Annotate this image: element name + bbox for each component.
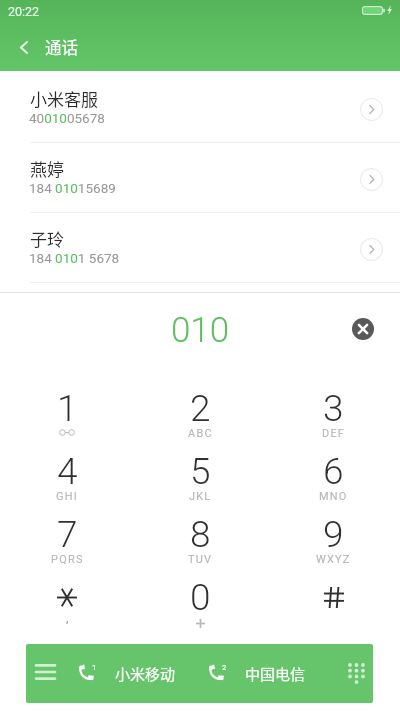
staticText: WXYZ	[316, 553, 351, 566]
button[interactable]: 7	[0, 507, 134, 570]
button[interactable]: Delete	[352, 318, 374, 340]
staticText: 4001005678	[29, 110, 105, 126]
staticText: 1	[57, 387, 78, 430]
staticText: 1	[92, 663, 97, 672]
button[interactable]: Contact details	[342, 73, 400, 143]
button[interactable]: 4	[0, 444, 134, 507]
staticText: 小米移动	[115, 663, 176, 685]
staticText: 20:22	[8, 4, 40, 19]
button[interactable]: 小米客服	[0, 73, 400, 143]
button[interactable]: Contact details	[342, 143, 400, 213]
staticText: 3	[323, 387, 344, 430]
staticText: 燕婷	[30, 156, 64, 181]
button[interactable]: ,	[0, 570, 134, 633]
staticText: ABC	[188, 427, 213, 440]
button[interactable]: 8	[134, 507, 267, 570]
staticText: 4	[57, 450, 78, 493]
staticText: DEF	[322, 427, 346, 440]
button[interactable]: 2	[134, 381, 267, 444]
staticText: 中国电信	[245, 663, 306, 685]
button[interactable]: 1	[68, 644, 179, 703]
staticText: 2	[190, 387, 211, 430]
button[interactable]: Dialpad	[330, 644, 373, 703]
staticText: 8	[190, 513, 211, 556]
button[interactable]: 5	[134, 444, 267, 507]
staticText: 6	[323, 450, 344, 493]
button[interactable]	[267, 570, 400, 633]
staticText: MNO	[319, 490, 348, 503]
staticText: PQRS	[51, 553, 84, 566]
button[interactable]: Menu	[26, 644, 71, 703]
staticText: 2	[222, 663, 227, 672]
button[interactable]: 3	[267, 381, 400, 444]
button[interactable]: Back	[2, 23, 46, 71]
staticText: 0	[190, 576, 211, 619]
staticText: 5	[190, 450, 211, 493]
staticText: 子玲	[30, 226, 64, 251]
staticText: 010	[0, 310, 400, 351]
button[interactable]: 6	[267, 444, 400, 507]
button[interactable]: 0	[134, 570, 267, 633]
staticText: 184 0101 5678	[29, 250, 120, 266]
staticText: 小米客服	[30, 86, 98, 111]
button[interactable]: 1	[0, 381, 134, 444]
staticText: TUV	[188, 553, 213, 566]
staticText: ,	[66, 611, 69, 625]
staticText: 184 01015689	[29, 180, 116, 196]
button[interactable]: 2	[198, 644, 309, 703]
staticText: JKL	[189, 490, 212, 503]
button[interactable]: 子玲	[0, 213, 400, 283]
staticText: 9	[323, 513, 344, 556]
button[interactable]: 燕婷	[0, 143, 400, 213]
staticText: GHI	[56, 490, 78, 503]
staticText: 通话	[45, 35, 78, 59]
button[interactable]: Contact details	[342, 213, 400, 283]
staticText: 7	[57, 513, 78, 556]
button[interactable]: 9	[267, 507, 400, 570]
